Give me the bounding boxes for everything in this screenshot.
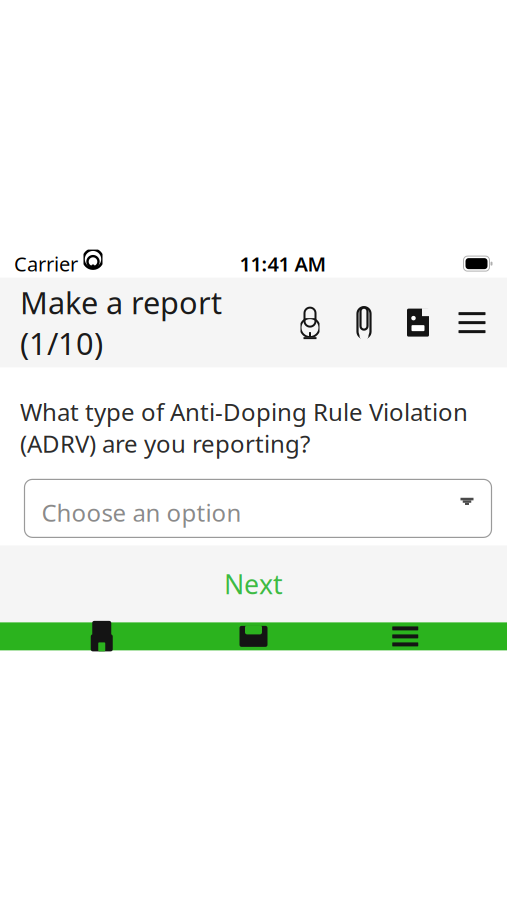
button[interactable]: Home xyxy=(52,622,152,650)
staticText: 11:41 AM xyxy=(239,250,326,277)
staticText: Choose an option xyxy=(41,496,241,528)
button[interactable]: Choose an option xyxy=(24,479,491,537)
button[interactable]: Attach file xyxy=(351,306,377,340)
button[interactable]: Next xyxy=(0,545,507,622)
staticText: Next xyxy=(224,566,283,602)
button[interactable]: Attach image xyxy=(405,306,431,340)
button[interactable]: Menu xyxy=(355,622,455,650)
button[interactable]: Menu xyxy=(457,306,487,340)
staticText: Carrier xyxy=(14,250,78,277)
staticText: Make a report (1/10) xyxy=(20,282,222,363)
staticText: What type of Anti-Doping Rule Violation … xyxy=(20,396,468,459)
button[interactable]: Messages xyxy=(203,622,303,650)
button[interactable]: Voice recording xyxy=(297,306,323,340)
